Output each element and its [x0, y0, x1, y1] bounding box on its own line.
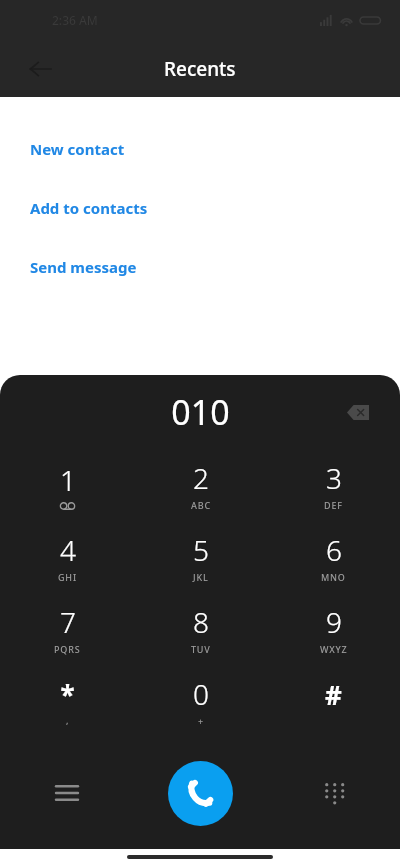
button[interactable]: 4	[0, 521, 134, 593]
button[interactable]: Dialpad	[267, 737, 400, 849]
staticText: 7	[60, 603, 76, 641]
staticText: 5	[193, 531, 209, 569]
button[interactable]: New contact	[0, 119, 400, 178]
staticText: MNO	[321, 571, 346, 583]
button[interactable]: 2	[134, 449, 267, 521]
staticText: New contact	[30, 139, 125, 159]
staticText: Recents	[164, 56, 236, 82]
button[interactable]: 1	[0, 449, 134, 521]
staticText: 4	[60, 531, 76, 569]
staticText: GHI	[58, 571, 77, 583]
button[interactable]: 0	[134, 665, 267, 737]
button[interactable]: *	[0, 665, 134, 737]
staticText: 0	[193, 675, 209, 713]
button[interactable]: 6	[267, 521, 400, 593]
button[interactable]: Send message	[0, 237, 400, 296]
staticText: DEF	[324, 499, 343, 511]
button[interactable]: 9	[267, 593, 400, 665]
button[interactable]: Call	[168, 761, 233, 826]
button[interactable]: 5	[134, 521, 267, 593]
staticText: 6	[326, 531, 342, 569]
staticText: *	[60, 677, 75, 712]
button[interactable]: Add to contacts	[0, 178, 400, 237]
staticText: JKL	[193, 571, 209, 583]
staticText: WXYZ	[320, 643, 348, 655]
staticText: 8	[193, 603, 209, 641]
staticText: TUV	[191, 643, 211, 655]
button[interactable]: 3	[267, 449, 400, 521]
staticText: 3	[326, 459, 342, 497]
button[interactable]: 7	[0, 593, 134, 665]
staticText: Add to contacts	[30, 198, 148, 218]
staticText: 1	[60, 461, 76, 499]
staticText: PQRS	[54, 643, 81, 655]
staticText: 010	[171, 389, 230, 435]
button[interactable]: #	[267, 665, 400, 737]
staticText: 2	[193, 459, 209, 497]
staticText: ABC	[191, 499, 211, 511]
button[interactable]: Menu	[0, 737, 134, 849]
button[interactable]: 8	[134, 593, 267, 665]
staticText: #	[325, 677, 342, 712]
staticText: ,	[66, 714, 70, 726]
button[interactable]: Backspace	[338, 392, 378, 432]
staticText: +	[198, 715, 204, 727]
staticText: Send message	[30, 257, 137, 277]
staticText: 2:36 AM	[52, 12, 98, 28]
staticText: 9	[326, 603, 342, 641]
